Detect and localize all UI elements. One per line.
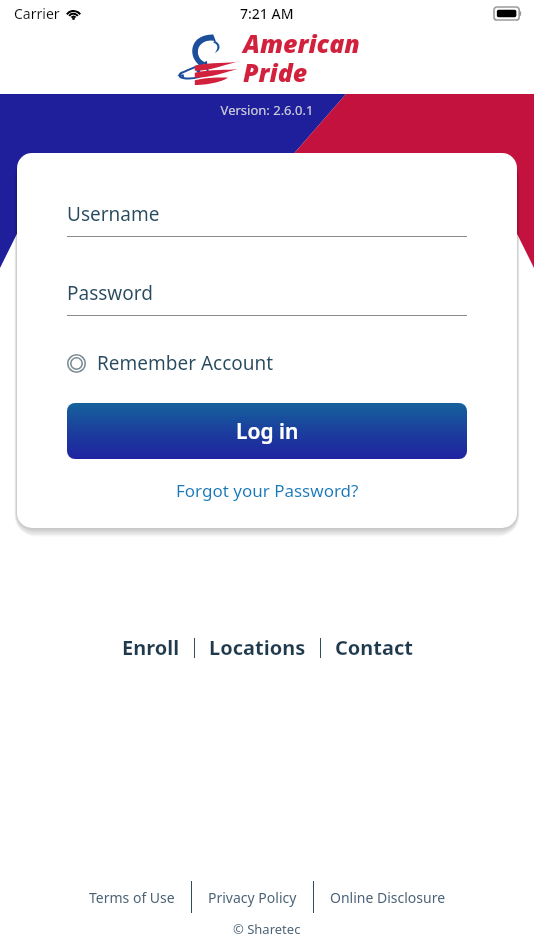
button[interactable]: Forgot your Password? (67, 479, 467, 502)
staticText: Remember Account (97, 350, 274, 376)
staticText: Password (67, 280, 153, 306)
button[interactable]: Terms of Use (73, 883, 191, 912)
button[interactable]: Username (67, 201, 467, 237)
button[interactable]: Online Disclosure (314, 883, 462, 912)
staticText: Online Disclosure (330, 888, 446, 907)
button[interactable]: Contact (321, 628, 427, 667)
staticText: Locations (209, 634, 306, 661)
button[interactable]: Locations (195, 628, 320, 667)
staticText: Terms of Use (89, 888, 175, 907)
button[interactable]: Remember Account (67, 346, 274, 380)
staticText: © Sharetec (233, 920, 301, 938)
staticText: 7:21 AM (240, 4, 294, 23)
staticText: Contact (335, 634, 413, 661)
staticText: Enroll (122, 634, 180, 661)
staticText: Version: 2.6.0.1 (0, 101, 534, 119)
button[interactable]: Enroll (108, 628, 194, 667)
staticText: Log in (236, 417, 299, 446)
staticText: Carrier (14, 4, 60, 23)
staticText: Username (67, 201, 160, 227)
staticText: Privacy Policy (208, 888, 297, 907)
button[interactable]: Password (67, 280, 467, 316)
staticText: Pride (243, 55, 308, 89)
staticText: American (243, 26, 360, 60)
button[interactable]: Log in (67, 403, 467, 459)
button[interactable]: Privacy Policy (192, 883, 313, 912)
staticText: Forgot your Password? (176, 479, 359, 502)
